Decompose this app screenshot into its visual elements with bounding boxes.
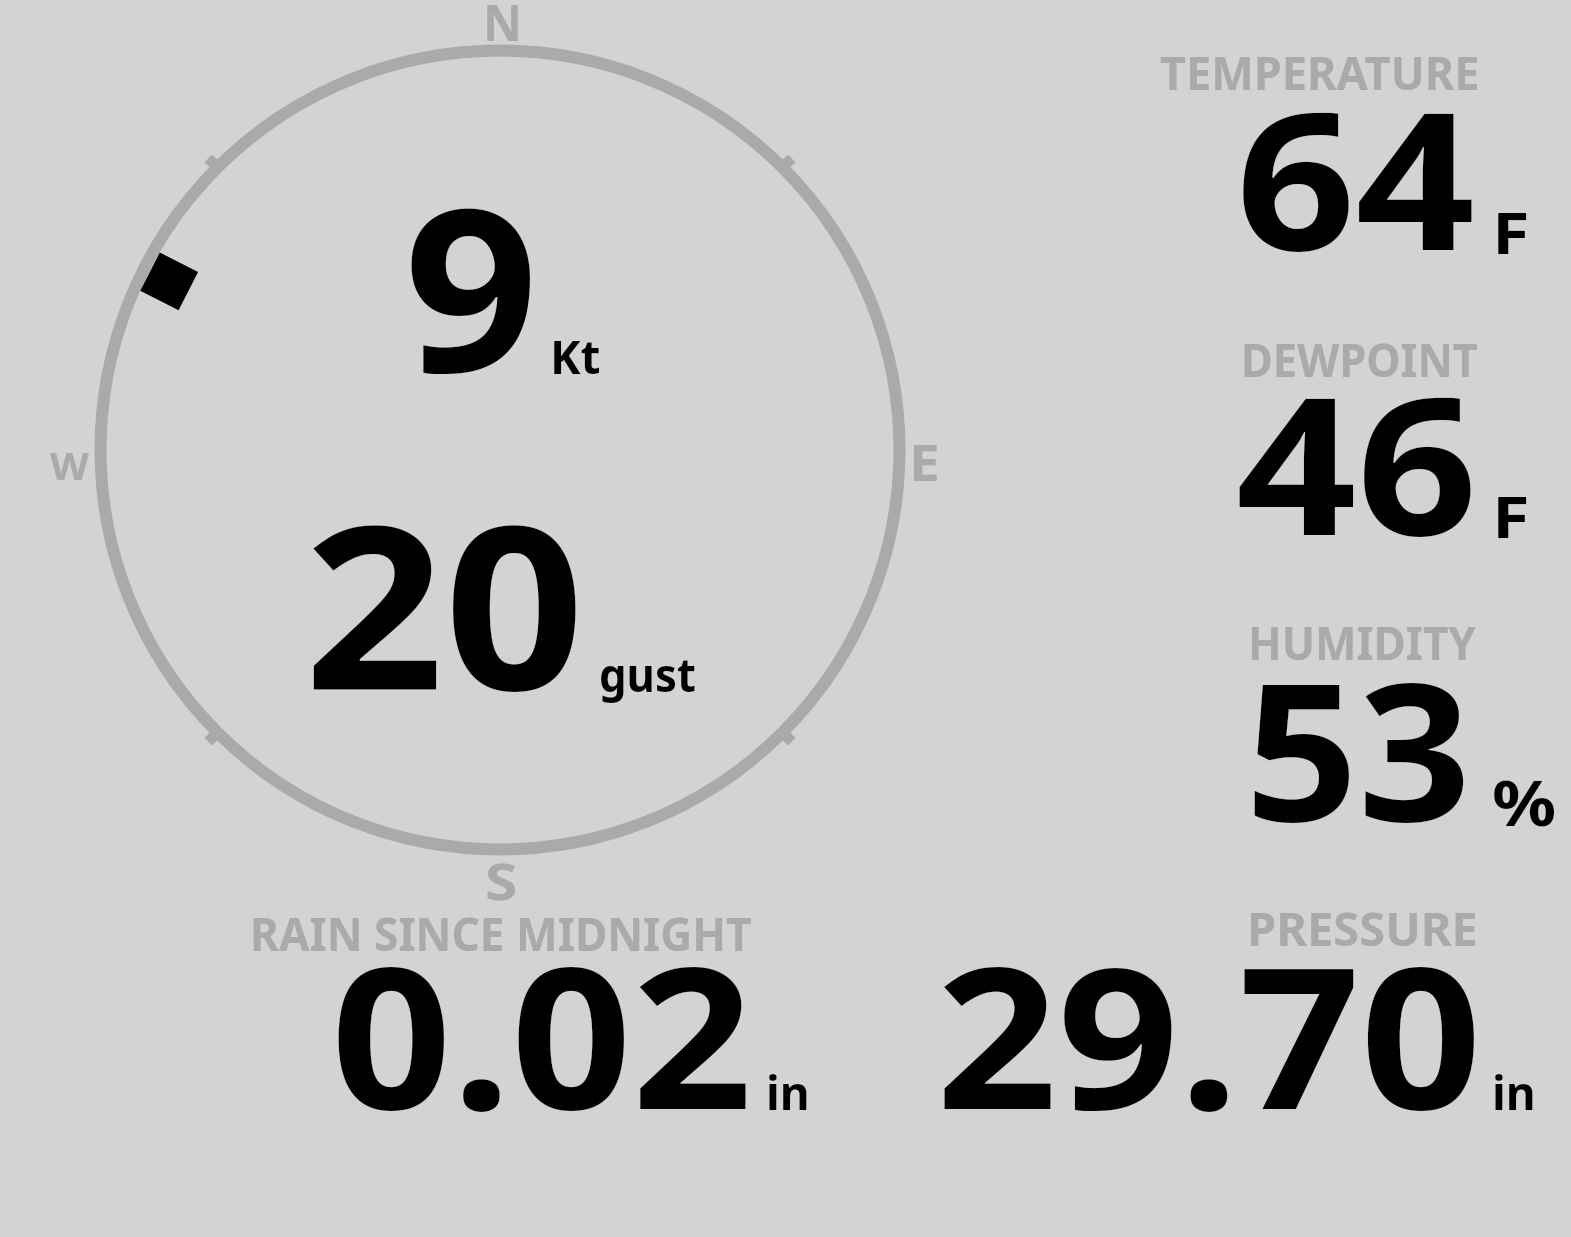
staticText: 0.02 [331,899,753,1166]
button[interactable]: Wind speed 9 knots [400,195,610,380]
staticText: HUMIDITY [1248,611,1477,674]
button[interactable]: Humidity 53 percent [1150,620,1560,835]
staticText: 9 [404,130,539,438]
button[interactable]: Rain since midnight 0.02 inches [245,908,815,1116]
staticText: S [485,847,518,915]
staticText: TEMPERATURE [1160,41,1480,104]
staticText: DEWPOINT [1241,328,1478,391]
staticText: in [766,1061,810,1124]
button[interactable]: Temperature 64 degrees Fahrenheit [1150,50,1555,260]
staticText: % [1492,759,1556,845]
staticText: 53 [1245,618,1472,877]
staticText: PRESSURE [1247,897,1478,960]
staticText: 46 [1236,332,1478,591]
staticText: F [1492,477,1530,555]
button[interactable]: Pressure 29.70 inches of mercury [935,905,1540,1116]
staticText: 29.70 [936,899,1482,1166]
staticText: Kt [550,325,601,388]
staticText: N [483,0,522,55]
button[interactable]: Wind direction, west north west [90,40,910,860]
staticText: gust [599,643,697,706]
button[interactable]: Gusting to 20 knots [305,515,705,710]
staticText: 20 [304,448,585,756]
staticText: in [1492,1061,1536,1124]
staticText: F [1492,193,1530,271]
staticText: W [50,439,89,491]
staticText: E [909,428,940,496]
staticText: RAIN SINCE MIDNIGHT [250,902,752,965]
staticText: 64 [1236,47,1476,306]
button[interactable]: Dew point 46 degrees Fahrenheit [1150,335,1555,545]
